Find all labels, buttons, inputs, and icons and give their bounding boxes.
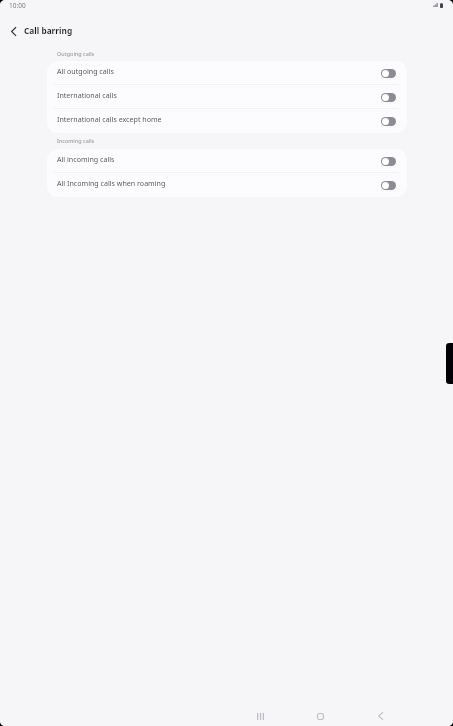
button[interactable]: Back [0, 17, 26, 43]
staticText: 10:00 [9, 1, 26, 10]
staticText: All incoming calls [57, 154, 381, 164]
other: Battery [440, 3, 443, 8]
button[interactable]: Toggle [381, 69, 396, 78]
staticText: Incoming calls [57, 137, 95, 144]
other: Signal strength [433, 3, 438, 7]
button[interactable]: All incoming calls [47, 149, 407, 173]
button[interactable]: All outgoing calls [47, 61, 407, 85]
button[interactable]: All Incoming calls when roaming [47, 173, 407, 197]
button[interactable]: Home [306, 702, 334, 726]
button[interactable]: Toggle [381, 181, 396, 190]
button[interactable]: Back [366, 702, 394, 726]
staticText: International calls except home [57, 114, 381, 124]
staticText: Call barring [24, 25, 73, 36]
button[interactable]: International calls except home [47, 109, 407, 133]
staticText: All Incoming calls when roaming [57, 178, 381, 188]
button[interactable]: Toggle [381, 117, 396, 126]
button[interactable]: Toggle [381, 157, 396, 166]
staticText: All outgoing calls [57, 66, 381, 76]
button[interactable]: Toggle [381, 93, 396, 102]
button[interactable]: Edge panel [446, 343, 453, 384]
button[interactable]: International calls [47, 85, 407, 109]
staticText: Outgoing calls [57, 50, 95, 57]
button[interactable]: Recent apps [246, 702, 274, 726]
staticText: International calls [57, 90, 381, 100]
